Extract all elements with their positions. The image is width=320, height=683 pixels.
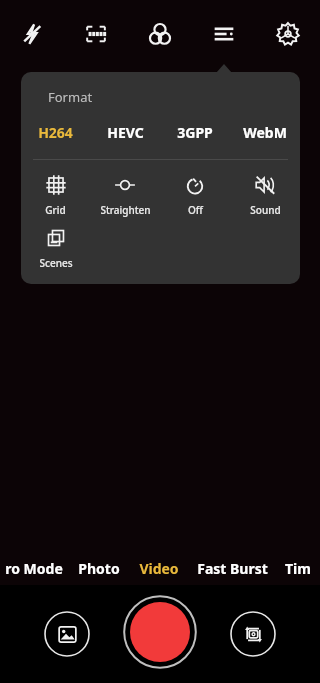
staticText: Photo [78,559,120,578]
button[interactable]: Tim [276,551,320,585]
staticText: HEVC [107,123,144,142]
button[interactable]: WebM [230,119,300,145]
staticText: Video [139,559,179,578]
staticText: ro Mode [5,559,63,578]
button[interactable]: Settings [256,0,320,68]
staticText: WebM [243,123,287,142]
staticText: Straighten [100,203,151,217]
staticText: Tim [285,559,311,578]
button[interactable]: Resolution 1080P [64,0,128,68]
staticText: Off [188,203,203,217]
button[interactable]: More settings [192,0,256,68]
button[interactable]: Gallery [44,611,90,657]
button[interactable]: 3GPP [160,119,230,145]
button[interactable]: HEVC [90,119,160,145]
staticText: Scenes [39,256,73,270]
staticText: Grid [45,203,66,217]
button[interactable]: Straighten [90,174,160,217]
button[interactable]: Record [123,595,197,669]
staticText: Fast Burst [197,559,268,578]
staticText: Format [48,88,93,106]
button[interactable]: Photo [68,551,130,585]
staticText: 3GPP [177,123,213,142]
button[interactable]: ro Mode [0,551,68,585]
button[interactable]: Filters [128,0,192,68]
button[interactable]: Video [130,551,188,585]
button[interactable]: Scenes [21,227,91,270]
button[interactable]: Sound [230,174,300,217]
button[interactable]: Grid [21,174,90,217]
staticText: Sound [250,203,281,217]
button[interactable]: H264 [21,119,90,145]
button[interactable]: Switch camera [230,611,276,657]
button[interactable]: Flash off [0,0,64,68]
button[interactable]: Fast Burst [188,551,276,585]
button[interactable]: Off [160,174,230,217]
staticText: H264 [38,123,73,142]
